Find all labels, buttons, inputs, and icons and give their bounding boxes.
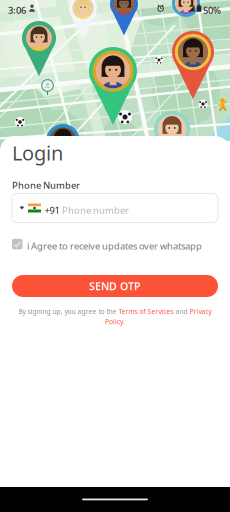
staticText: +91 [44,204,59,216]
staticText: 50% [203,4,221,16]
staticText: i Agree to receive updates over whatsapp [27,240,202,252]
staticText: Login [12,139,63,166]
staticText: SEND OTP [89,279,141,293]
staticText: and [173,307,189,316]
staticText: Phone Number [12,179,80,191]
button[interactable]: SEND OTP [12,275,218,297]
staticText: Phone number [62,204,129,216]
staticText: Terms of Services [118,307,173,316]
staticText: 3:06 [8,4,26,16]
staticText: By signing up, you agree to the [18,307,118,316]
button[interactable]: Privacy [189,307,211,316]
staticText: Privacy [189,307,211,316]
button[interactable]: i Agree to receive updates over whatsapp [12,237,204,251]
staticText: Policy. [105,317,125,326]
button[interactable]: Policy. [105,317,125,326]
button[interactable]: Terms of Services [118,307,173,316]
